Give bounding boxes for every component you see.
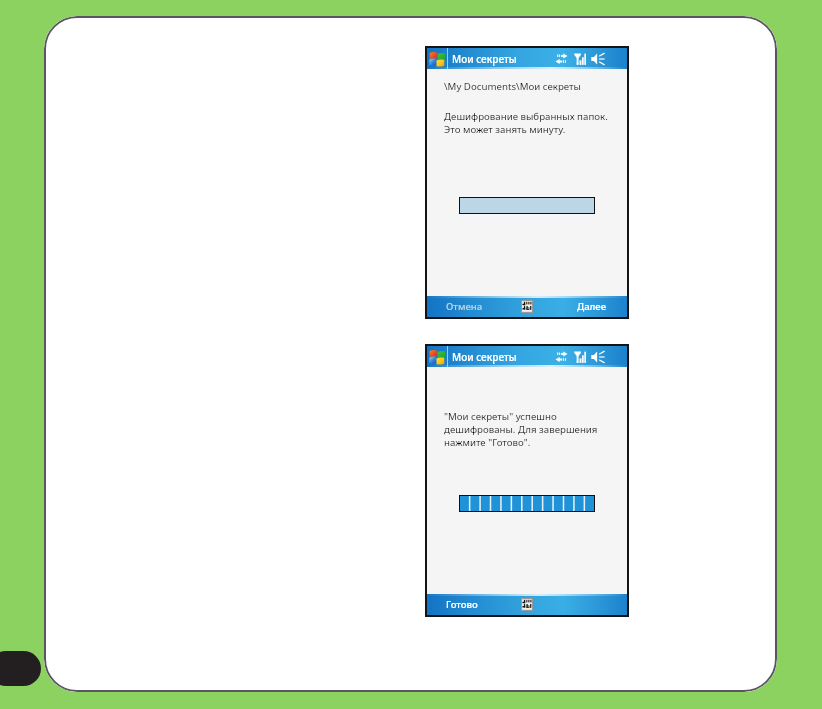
button[interactable]: Start menu	[429, 348, 446, 365]
button[interactable]: Input panel	[521, 300, 533, 313]
button[interactable]: Start menu	[429, 50, 446, 67]
staticText: Дешифрование выбранных папок. Это может …	[444, 110, 608, 136]
staticText: Готово	[446, 598, 478, 611]
button[interactable]: Отмена	[427, 296, 505, 317]
button[interactable]: Далее	[549, 296, 627, 317]
button[interactable]: Готово	[427, 594, 505, 615]
button[interactable]: Input panel	[521, 598, 533, 611]
staticText: \My Documents\Мои секреты	[444, 80, 581, 93]
staticText: "Мои секреты" успешно дешифрованы. Для з…	[444, 410, 598, 449]
staticText: Отмена	[446, 300, 483, 313]
staticText: Мои секреты	[452, 52, 517, 66]
staticText: Мои секреты	[452, 350, 517, 364]
staticText: Далее	[577, 300, 607, 313]
